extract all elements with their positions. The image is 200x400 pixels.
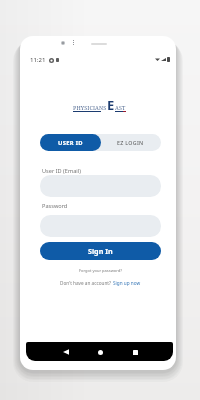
staticText: 11:21 [30, 56, 46, 64]
button[interactable] [40, 134, 161, 151]
staticText: AST [115, 104, 126, 111]
staticText: Don't have an account? [60, 280, 113, 286]
button[interactable]: Sign up now [113, 280, 141, 286]
button[interactable]: Password input [40, 215, 161, 237]
staticText: Password [42, 202, 68, 210]
staticText: User ID (Email) [42, 167, 81, 175]
button[interactable]: Back [57, 343, 75, 361]
button[interactable]: Recent apps [126, 343, 144, 361]
staticText: Sign In [88, 246, 113, 256]
staticText: EZ LOGIN [117, 139, 144, 146]
button[interactable]: EZ LOGIN [100, 134, 161, 151]
button[interactable]: Forgot your password? [79, 268, 122, 273]
button[interactable]: USER ID [40, 134, 101, 151]
staticText: USER ID [58, 139, 83, 147]
staticText: E [107, 96, 115, 114]
button[interactable]: Sign In [40, 242, 161, 260]
button[interactable]: User ID (Email) input [40, 175, 161, 197]
staticText: PHYSICIANS [73, 104, 107, 111]
button[interactable]: Home [91, 343, 109, 361]
